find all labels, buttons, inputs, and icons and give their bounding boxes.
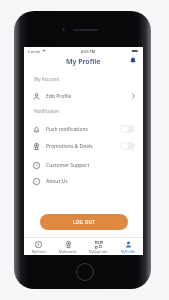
staticText: $ — [37, 242, 40, 248]
staticText: MyProfile — [121, 250, 136, 254]
button[interactable]: MyProfile — [113, 238, 143, 255]
staticText: Customer Support — [46, 162, 90, 169]
staticText: Promotions & Deals — [46, 143, 93, 150]
button[interactable]: LOG OUT — [40, 214, 128, 230]
button[interactable]: $ — [24, 238, 53, 255]
staticText: Carrier — [28, 49, 41, 54]
staticText: 8:05 PM — [81, 49, 96, 54]
staticText: MyPoints — [32, 250, 46, 254]
staticText: Notification — [34, 108, 60, 114]
staticText: ? — [36, 163, 38, 169]
staticText: My Account — [34, 76, 60, 82]
staticText: i — [36, 179, 38, 185]
staticText: My Profile — [66, 57, 101, 67]
staticText: MyRewards — [59, 250, 77, 254]
staticText: Edit Profile — [46, 93, 72, 100]
staticText: MyQigiCode — [89, 250, 108, 254]
button[interactable]: Edit Profile — [24, 88, 143, 104]
button[interactable]: Promotions & Deals — [24, 138, 143, 154]
button[interactable]: Toggle — [120, 125, 135, 133]
button[interactable]: MyRewards — [53, 238, 83, 255]
button[interactable]: Notifications — [127, 54, 139, 66]
button[interactable]: Toggle — [120, 142, 135, 150]
button[interactable]: i — [24, 173, 143, 189]
staticText: Push notifications — [46, 126, 88, 133]
staticText: LOG OUT — [73, 219, 96, 225]
button[interactable]: Push notifications — [24, 121, 143, 137]
button[interactable]: ? — [24, 157, 143, 173]
staticText: About Us — [46, 178, 68, 185]
button[interactable]: MyQigiCode — [83, 238, 113, 255]
